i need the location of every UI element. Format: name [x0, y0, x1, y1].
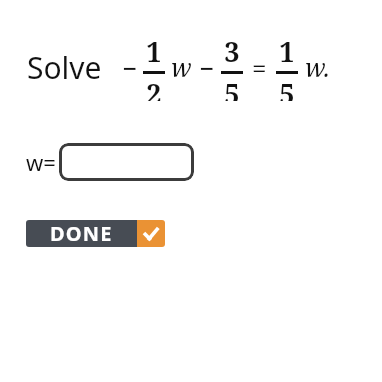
staticText: =	[252, 50, 267, 85]
staticText: 3	[224, 33, 240, 70]
other: Submit answer	[137, 220, 165, 247]
button[interactable]	[59, 143, 194, 181]
staticText: 2	[146, 75, 162, 101]
staticText: w	[171, 50, 192, 84]
staticText: 1	[146, 33, 162, 70]
staticText: 5	[279, 75, 295, 101]
staticText: w=	[26, 147, 56, 177]
staticText: −	[122, 50, 138, 85]
staticText: −	[199, 50, 215, 85]
staticText: DONE	[50, 220, 113, 247]
staticText: 1	[279, 33, 295, 70]
staticText: 5	[224, 75, 240, 101]
staticText: Solve	[27, 47, 102, 88]
button[interactable]: DONE	[26, 220, 165, 247]
staticText: w.	[305, 50, 330, 84]
